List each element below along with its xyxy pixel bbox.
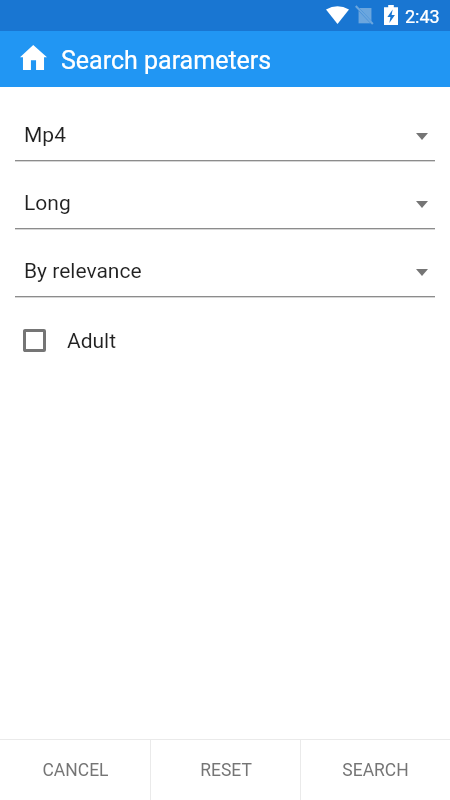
button[interactable]: By relevance [0, 243, 450, 297]
staticText: SEARCH [342, 760, 409, 781]
button[interactable]: Adult [0, 324, 450, 357]
staticText: RESET [200, 760, 252, 781]
staticText: Search parameters [61, 46, 272, 75]
staticText: Adult [67, 329, 117, 354]
button[interactable]: SEARCH [301, 740, 450, 800]
staticText: 2:43 [405, 6, 440, 27]
staticText: Mp4 [24, 123, 66, 148]
button[interactable]: RESET [151, 740, 300, 800]
staticText: Long [24, 191, 71, 216]
button[interactable]: Long [0, 175, 450, 229]
button[interactable]: Mp4 [0, 107, 450, 161]
button[interactable]: Home [10, 37, 57, 78]
staticText: By relevance [24, 259, 142, 284]
staticText: CANCEL [42, 760, 109, 781]
button[interactable]: CANCEL [0, 740, 150, 800]
